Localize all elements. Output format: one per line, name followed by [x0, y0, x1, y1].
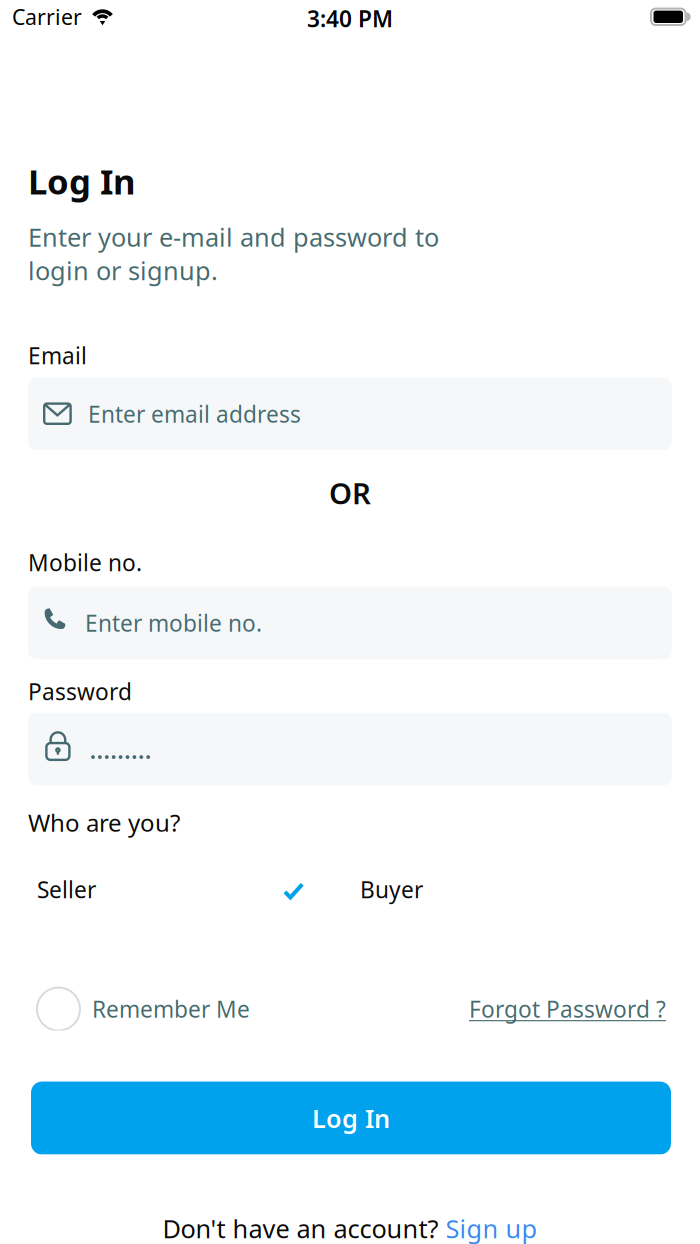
staticText: Forgot Password ? — [469, 994, 666, 1024]
staticText: Password — [28, 676, 132, 707]
staticText: Email — [28, 340, 87, 370]
button[interactable]: Sign up — [445, 1212, 537, 1244]
staticText: Enter your e-mail and password to login … — [28, 220, 439, 287]
staticText: Who are you? — [28, 807, 180, 838]
staticText: Don't have an account? — [162, 1212, 445, 1244]
button[interactable]: Enter email address — [28, 377, 672, 450]
staticText: Sign up — [445, 1212, 537, 1244]
staticText: Carrier — [12, 2, 82, 31]
button[interactable]: Remember Me — [37, 988, 250, 1031]
staticText: OR — [329, 473, 371, 512]
staticText: Buyer — [360, 874, 423, 905]
button[interactable]: Enter mobile no. — [28, 586, 672, 659]
staticText: Log In — [312, 1101, 390, 1135]
button[interactable]: Selected — [283, 878, 305, 901]
staticText: Mobile no. — [28, 547, 142, 577]
button[interactable] — [28, 713, 672, 786]
staticText: Remember Me — [92, 994, 250, 1024]
staticText: Log In — [28, 158, 136, 204]
staticText: Enter email address — [88, 399, 301, 429]
button[interactable]: Log In — [31, 1082, 671, 1155]
button[interactable]: Seller — [37, 874, 96, 905]
button[interactable]: Forgot Password ? — [469, 994, 666, 1024]
button[interactable]: Buyer — [360, 874, 423, 905]
staticText: Seller — [37, 874, 96, 905]
staticText: Enter mobile no. — [85, 608, 262, 638]
staticText: 3:40 PM — [307, 3, 393, 33]
